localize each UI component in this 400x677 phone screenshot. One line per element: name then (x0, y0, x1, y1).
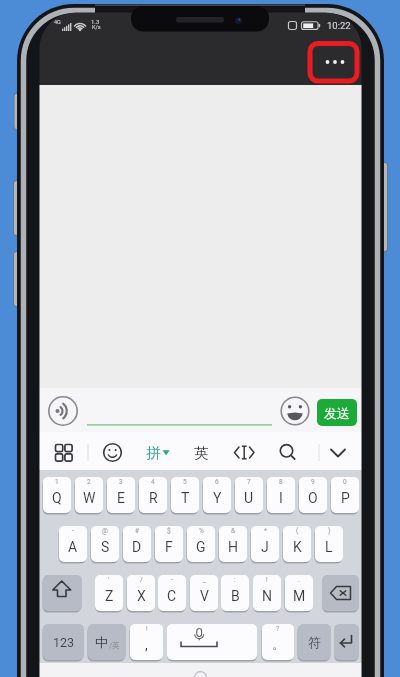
button[interactable]: 0 (331, 477, 359, 513)
button[interactable]: 2 (75, 477, 103, 513)
button[interactable]: - (158, 575, 186, 611)
staticText: Y (213, 490, 222, 506)
button[interactable]: ) (315, 526, 343, 562)
staticText: - (72, 527, 74, 535)
staticText: 123 (53, 635, 75, 650)
staticText: 7 (247, 478, 251, 486)
button[interactable] (334, 624, 359, 660)
staticText: ! (266, 576, 268, 584)
button[interactable]: / (127, 575, 155, 611)
button[interactable]: 6 (203, 477, 231, 513)
button[interactable] (185, 437, 217, 468)
staticText: 3 (119, 478, 123, 486)
staticText: M (293, 588, 306, 604)
button[interactable]: 3 (107, 477, 135, 513)
staticText: I (279, 490, 283, 506)
button[interactable]: ! (130, 624, 163, 660)
staticText: O (308, 490, 318, 506)
staticText: 4G (54, 19, 61, 25)
staticText: Q (52, 490, 62, 506)
staticText: 10:22 (327, 20, 351, 31)
staticText: /英 (109, 641, 120, 650)
staticText: 1.3 (91, 18, 100, 25)
button[interactable]: 9 (299, 477, 327, 513)
staticText: C (167, 588, 177, 604)
staticText: K/s (92, 24, 101, 30)
staticText: 6 (215, 478, 219, 486)
staticText: 5 (183, 478, 187, 486)
staticText: ) (328, 527, 331, 535)
button[interactable]: 1 (43, 477, 71, 513)
button[interactable]: # (123, 526, 151, 562)
staticText: _ (203, 576, 206, 584)
button[interactable] (138, 437, 172, 468)
button[interactable] (88, 624, 126, 660)
button[interactable] (96, 437, 129, 468)
staticText: ? (276, 625, 280, 633)
staticText: V (200, 588, 209, 604)
staticText: K (293, 539, 302, 555)
button[interactable] (322, 575, 359, 611)
staticText: H (228, 539, 238, 555)
button[interactable] (280, 396, 310, 426)
button[interactable]: & (219, 526, 247, 562)
staticText: , (145, 637, 148, 653)
button[interactable] (271, 437, 303, 468)
staticText: 英 (194, 444, 209, 462)
button[interactable] (47, 437, 79, 468)
button[interactable]: ' (95, 575, 123, 611)
button[interactable]: 8 (267, 477, 295, 513)
staticText: $ (167, 527, 171, 535)
staticText: - (171, 576, 173, 584)
button[interactable]: 5 (171, 477, 199, 513)
staticText: Z (105, 588, 114, 604)
staticText: . (298, 576, 300, 584)
staticText: J (261, 539, 269, 555)
staticText: P (341, 490, 350, 506)
button[interactable]: ? (262, 624, 294, 660)
staticText: W (83, 490, 96, 506)
button[interactable]: 7 (235, 477, 263, 513)
button[interactable]: 4 (139, 477, 167, 513)
staticText: 。 (272, 637, 285, 653)
staticText: @ (102, 527, 108, 535)
staticText: 1 (55, 478, 59, 486)
staticText: X (137, 588, 146, 604)
button[interactable] (48, 396, 78, 426)
staticText: 4 (151, 478, 155, 486)
button[interactable]: . (285, 575, 313, 611)
staticText: ' (108, 576, 110, 584)
button[interactable] (167, 624, 257, 660)
staticText: : (234, 576, 236, 584)
button[interactable] (86, 392, 274, 430)
staticText: A (68, 539, 78, 555)
staticText: N (262, 588, 272, 604)
button[interactable]: @ (91, 526, 119, 562)
button[interactable]: 123 (43, 624, 84, 660)
button[interactable]: - (59, 526, 87, 562)
staticText: 8 (279, 478, 283, 486)
staticText: R (149, 490, 158, 506)
staticText: 0 (343, 478, 347, 486)
button[interactable]: $ (155, 526, 183, 562)
button[interactable] (310, 43, 357, 81)
staticText: 拼 (146, 444, 161, 462)
button[interactable]: _ (190, 575, 218, 611)
button[interactable]: 符 (298, 624, 331, 660)
staticText: ! (146, 625, 148, 633)
staticText: 符 (308, 634, 321, 650)
button[interactable]: : (221, 575, 249, 611)
button[interactable]: * (251, 526, 279, 562)
button[interactable]: ! (253, 575, 281, 611)
staticText: U (244, 490, 254, 506)
button[interactable]: ( (283, 526, 311, 562)
button[interactable] (43, 575, 82, 611)
button[interactable]: % (187, 526, 215, 562)
staticText: 2 (87, 478, 91, 486)
button[interactable]: 发送 (317, 399, 357, 426)
staticText: T (181, 490, 190, 506)
button[interactable] (322, 437, 354, 468)
staticText: S (101, 539, 110, 555)
staticText: ( (296, 527, 299, 535)
button[interactable] (228, 437, 260, 468)
